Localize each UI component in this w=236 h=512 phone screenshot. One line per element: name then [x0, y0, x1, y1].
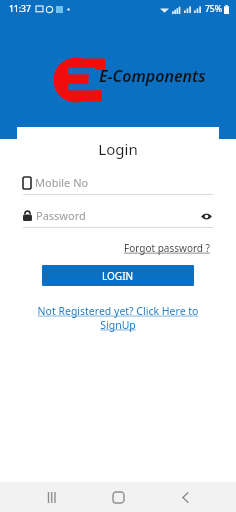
staticText: Login: [17, 139, 219, 159]
button[interactable]: Forgot password ?: [118, 239, 219, 257]
button[interactable]: Home: [103, 482, 133, 512]
button[interactable]: Mobile No: [23, 175, 213, 195]
staticText: Password: [36, 208, 199, 223]
staticText: 75%: [205, 3, 222, 15]
staticText: 11:37: [9, 3, 31, 15]
button[interactable]: Password: [23, 208, 213, 228]
button[interactable]: Recent apps: [37, 482, 67, 512]
button[interactable]: Back: [170, 482, 200, 512]
staticText: Mobile No: [35, 175, 213, 190]
button[interactable]: LOGIN: [42, 265, 194, 286]
staticText: Not Registered yet? Click Here to SignUp: [31, 304, 205, 332]
button[interactable]: Not Registered yet? Click Here to SignUp: [17, 304, 219, 332]
button[interactable]: Show password: [199, 209, 213, 223]
staticText: E-Components: [99, 65, 206, 87]
staticText: LOGIN: [102, 269, 134, 283]
